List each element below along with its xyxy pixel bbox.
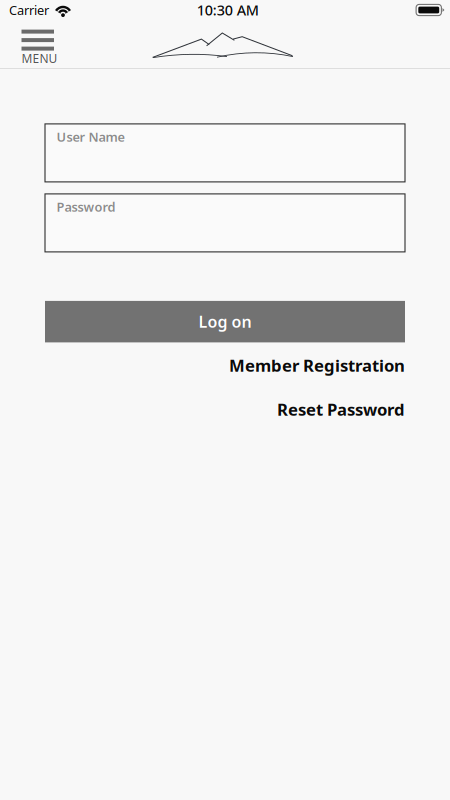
- button[interactable]: Password: [45, 194, 405, 252]
- button[interactable]: User Name: [45, 124, 405, 182]
- staticText: Log on: [198, 311, 251, 333]
- staticText: MENU: [21, 50, 57, 67]
- staticText: Password: [57, 198, 116, 215]
- button[interactable]: Log on: [45, 301, 405, 342]
- button[interactable]: Reset Password: [45, 398, 405, 420]
- button[interactable]: Member Registration: [45, 354, 405, 376]
- staticText: Reset Password: [277, 398, 405, 421]
- staticText: User Name: [57, 128, 125, 145]
- staticText: Member Registration: [229, 354, 405, 377]
- button[interactable]: Menu: [21, 30, 54, 67]
- staticText: Carrier: [9, 1, 49, 19]
- staticText: 10:30 AM: [197, 0, 259, 20]
